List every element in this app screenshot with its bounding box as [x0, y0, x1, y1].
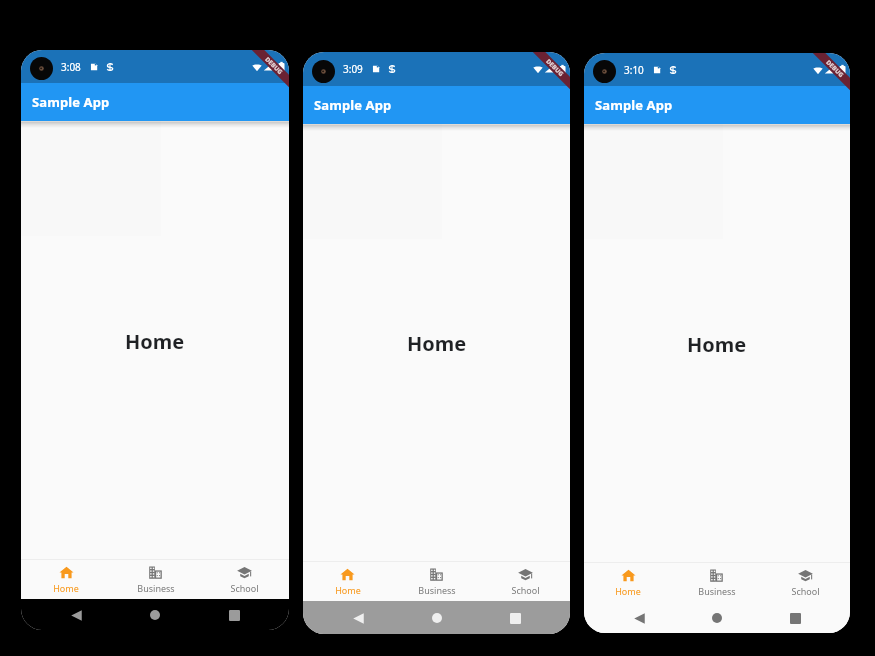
button[interactable]: Back — [61, 600, 91, 630]
button[interactable]: School — [481, 562, 570, 601]
button[interactable]: Recent apps — [780, 603, 810, 633]
staticText: Home — [53, 582, 79, 594]
staticText: Home — [615, 585, 641, 597]
staticText: Sample App — [32, 93, 110, 111]
staticText: Home — [335, 584, 361, 596]
button[interactable]: Back — [624, 603, 654, 633]
button[interactable]: Business — [672, 563, 761, 602]
staticText: Home — [125, 328, 185, 355]
staticText: DEBUG — [824, 58, 846, 80]
staticText: School — [230, 582, 259, 594]
staticText: Sample App — [595, 96, 673, 114]
staticText: Business — [137, 582, 175, 594]
button[interactable]: Home — [422, 603, 452, 633]
staticText: 3:09 — [343, 62, 363, 76]
button[interactable]: Home — [21, 560, 111, 599]
button[interactable]: Home — [140, 600, 170, 630]
button[interactable]: Business — [111, 560, 200, 599]
staticText: 3:10 — [624, 63, 644, 77]
button[interactable]: Home — [584, 563, 672, 602]
button[interactable]: School — [200, 560, 289, 599]
staticText: School — [511, 584, 540, 596]
button[interactable]: Home — [702, 603, 732, 633]
staticText: DEBUG — [263, 55, 285, 77]
staticText: Sample App — [314, 96, 392, 114]
button[interactable]: Recent apps — [500, 603, 530, 633]
staticText: 3:08 — [61, 60, 81, 74]
staticText: Home — [687, 331, 747, 358]
button[interactable]: School — [761, 563, 850, 602]
button[interactable]: Back — [343, 603, 373, 633]
button[interactable]: Home — [303, 562, 392, 601]
staticText: Business — [418, 584, 456, 596]
button[interactable]: Recent apps — [219, 600, 249, 630]
staticText: Home — [407, 330, 467, 357]
staticText: Business — [698, 585, 736, 597]
staticText: DEBUG — [544, 57, 566, 79]
staticText: School — [791, 585, 820, 597]
button[interactable]: Business — [392, 562, 481, 601]
